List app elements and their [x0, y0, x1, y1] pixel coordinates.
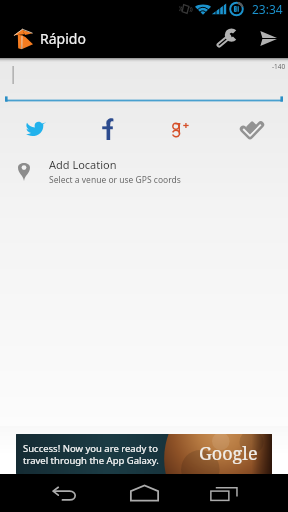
- button[interactable]: Back: [32, 474, 96, 512]
- staticText: Rápido: [40, 29, 86, 48]
- button[interactable]: Share on Twitter: [0, 108, 72, 149]
- button[interactable]: Recent apps: [192, 474, 256, 512]
- staticText: Select a venue or use GPS coords: [49, 174, 181, 186]
- staticText: Success! Now you are ready to travel thr…: [23, 442, 159, 466]
- button[interactable]: Advertisement: [16, 434, 272, 474]
- button[interactable]: Share on Facebook: [72, 108, 144, 149]
- button[interactable]: Add Location: [0, 149, 288, 193]
- button[interactable]: Share on Google Plus: [144, 108, 216, 149]
- button[interactable]: Home: [112, 474, 176, 512]
- button[interactable]: Send: [248, 18, 288, 58]
- staticText: Google: [199, 441, 258, 466]
- staticText: 23:34: [252, 1, 283, 17]
- button[interactable]: -140: [0, 58, 288, 108]
- staticText: -140: [272, 62, 286, 71]
- button[interactable]: Settings: [206, 18, 248, 58]
- staticText: Add Location: [49, 157, 117, 172]
- button[interactable]: Check in on Foursquare: [216, 108, 288, 149]
